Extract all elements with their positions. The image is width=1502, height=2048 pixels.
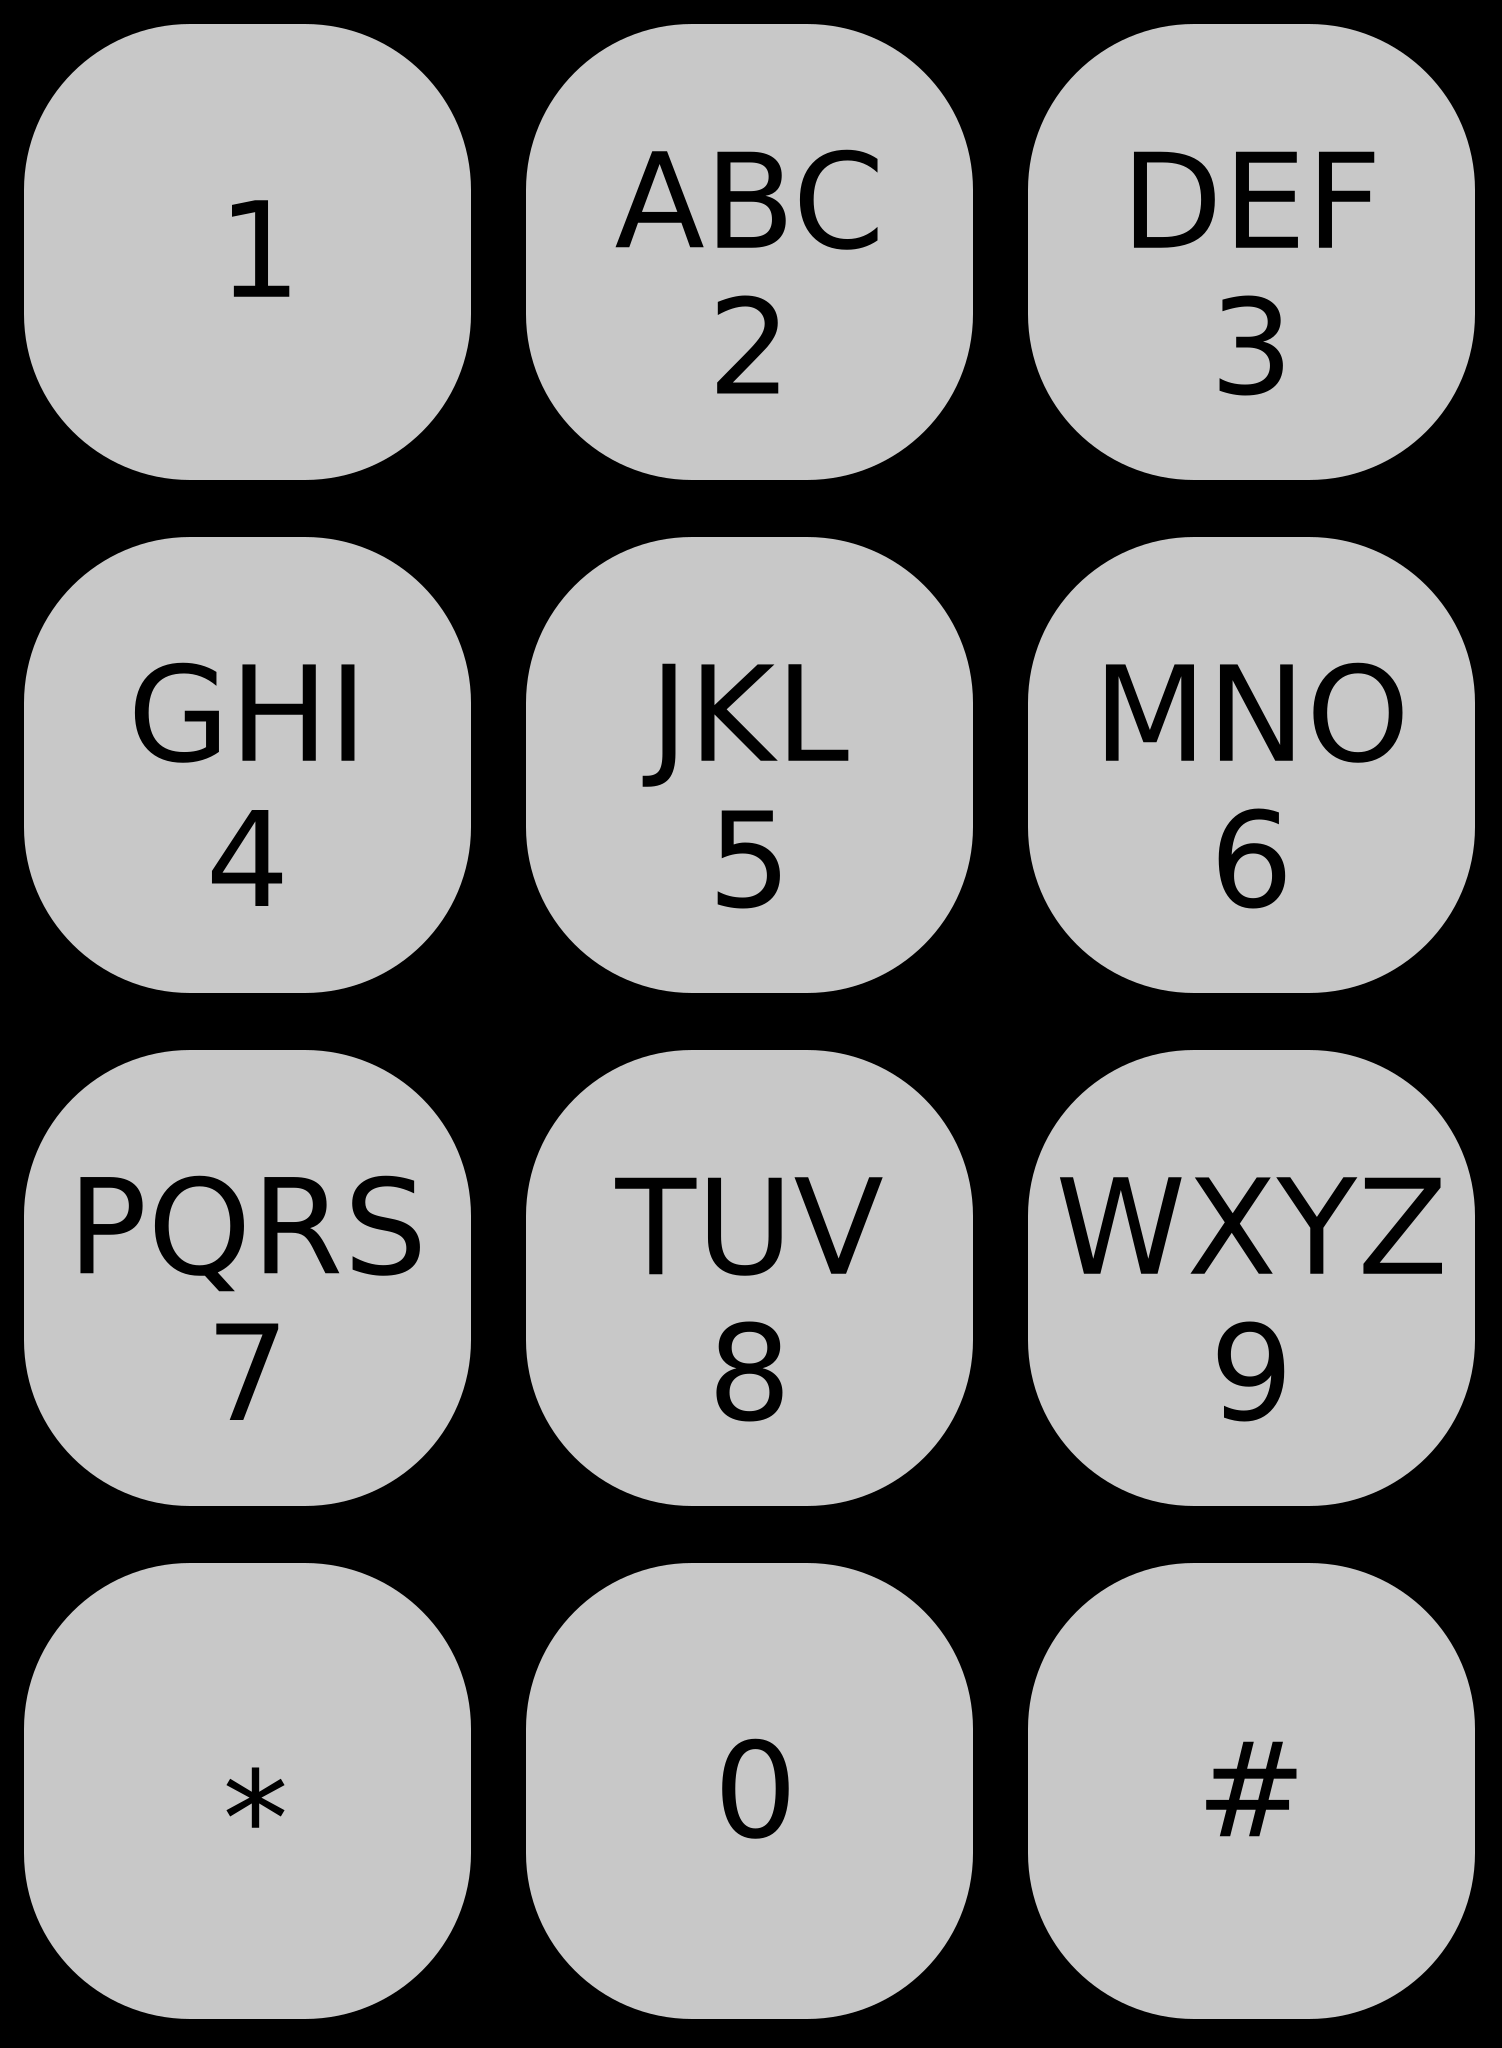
button[interactable]: 6 MNO <box>1028 537 1475 993</box>
button[interactable]: 3 DEF <box>1028 24 1475 480</box>
staticText: 7 <box>205 1297 289 1451</box>
staticText: DEF <box>1121 125 1382 279</box>
button[interactable]: Star <box>24 1563 471 2019</box>
button[interactable]: 0 <box>526 1563 973 2019</box>
staticText: 2 <box>707 271 791 425</box>
button[interactable]: 2 ABC <box>526 24 973 480</box>
staticText: 8 <box>707 1297 791 1451</box>
staticText: JKL <box>649 638 849 792</box>
staticText: PQRS <box>67 1151 427 1305</box>
staticText: GHI <box>127 638 367 792</box>
staticText: 4 <box>205 784 289 938</box>
staticText: 5 <box>707 784 791 938</box>
staticText: 6 <box>1209 784 1293 938</box>
staticText: 0 <box>713 1714 797 1868</box>
staticText: # <box>1196 1714 1307 1868</box>
button[interactable]: 8 TUV <box>526 1050 973 1506</box>
button[interactable]: 4 GHI <box>24 537 471 993</box>
staticText: * <box>222 1743 288 1897</box>
button[interactable]: Pound <box>1028 1563 1475 2019</box>
staticText: 3 <box>1209 271 1293 425</box>
staticText: MNO <box>1093 638 1410 792</box>
staticText: 1 <box>217 174 301 328</box>
staticText: 9 <box>1209 1297 1293 1451</box>
button[interactable]: 9 WXYZ <box>1028 1050 1475 1506</box>
staticText: TUV <box>615 1151 883 1305</box>
staticText: WXYZ <box>1055 1151 1447 1305</box>
staticText: ABC <box>614 125 884 279</box>
button[interactable]: 1 <box>24 24 471 480</box>
button[interactable]: 7 PQRS <box>24 1050 471 1506</box>
button[interactable]: 5 JKL <box>526 537 973 993</box>
